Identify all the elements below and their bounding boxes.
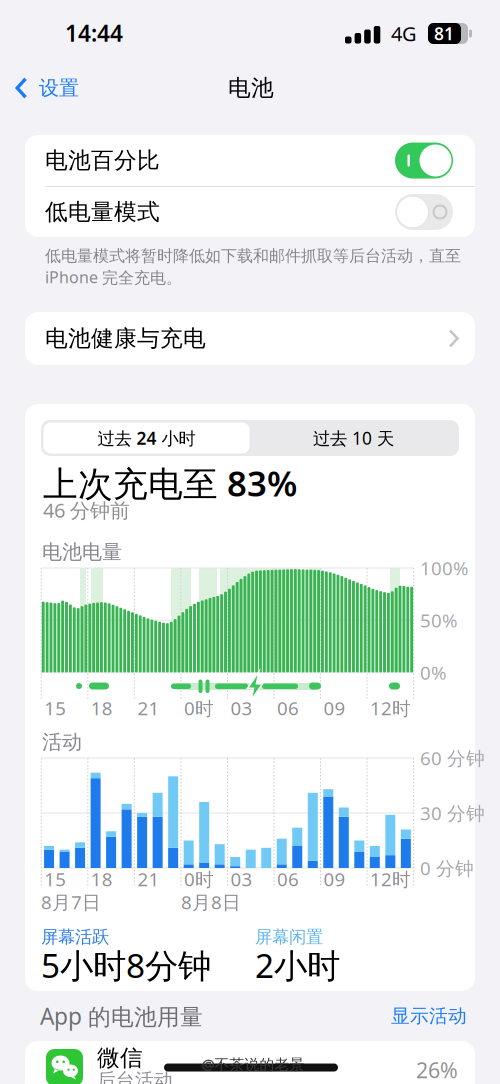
button[interactable]: 显示活动 xyxy=(0,0,220,31)
staticText: 30 分钟 xyxy=(420,801,485,825)
staticText: 09 xyxy=(323,696,345,720)
staticText: 14:44 xyxy=(65,18,123,48)
staticText: 26% xyxy=(416,1056,458,1084)
staticText: 电池 xyxy=(228,74,274,102)
staticText: 18 xyxy=(91,696,113,720)
button[interactable]: 电池健康与充电 xyxy=(25,312,475,365)
staticText: 06 xyxy=(277,696,299,720)
staticText: 100% xyxy=(420,556,469,580)
staticText: 12时 xyxy=(370,867,411,891)
staticText: 15 xyxy=(44,696,66,720)
staticText: 03 xyxy=(230,696,252,720)
staticText: 50% xyxy=(420,608,458,633)
staticText: 81 xyxy=(434,22,454,45)
staticText: 8月7日 xyxy=(41,890,101,914)
staticText: 低电量模式将暂时降低如下载和邮件抓取等后台活动，直至 xyxy=(45,246,461,266)
staticText: 06 xyxy=(277,867,299,891)
staticText: 微信 xyxy=(97,1044,143,1072)
staticText: 0% xyxy=(420,660,447,685)
button[interactable]: 微信 xyxy=(25,1041,475,1084)
staticText: 后台活动 xyxy=(97,1068,173,1084)
staticText: 电池百分比 xyxy=(45,147,160,174)
staticText: iPhone 完全充电。 xyxy=(45,266,182,288)
staticText: 60 分钟 xyxy=(420,746,485,770)
staticText: 设置 xyxy=(39,76,79,100)
staticText: 15 xyxy=(44,867,66,891)
staticText: 03 xyxy=(230,867,252,891)
staticText: 活动 xyxy=(42,730,82,754)
staticText: 过去 24 小时 xyxy=(97,426,195,449)
staticText: 显示活动 xyxy=(391,1004,467,1027)
staticText: 电池健康与充电 xyxy=(45,325,206,352)
staticText: 屏幕活跃 xyxy=(41,926,109,948)
staticText: App 的电池用量 xyxy=(40,1001,203,1031)
staticText: 5小时8分钟 xyxy=(41,943,211,987)
staticText: 09 xyxy=(323,867,345,891)
button[interactable]: 过去 10 天 xyxy=(250,422,456,453)
staticText: 46 分钟前 xyxy=(43,497,130,523)
staticText: 2小时 xyxy=(255,943,340,987)
staticText: @不茶说的老景 xyxy=(201,1054,304,1074)
staticText: 21 xyxy=(137,867,159,891)
staticText: 0 分钟 xyxy=(420,856,474,880)
button[interactable]: 电池百分比 xyxy=(25,135,475,186)
button[interactable]: 低电量模式 xyxy=(25,186,475,237)
button[interactable]: 设置 xyxy=(15,73,79,103)
staticText: 屏幕闲置 xyxy=(255,926,323,948)
staticText: 8月8日 xyxy=(181,890,241,914)
staticText: 低电量模式 xyxy=(45,198,160,226)
staticText: 上次充电至 83% xyxy=(43,460,297,506)
staticText: 电池电量 xyxy=(42,540,122,564)
staticText: 4G xyxy=(391,20,417,47)
staticText: 0时 xyxy=(184,867,214,891)
staticText: 18 xyxy=(91,867,113,891)
staticText: 12时 xyxy=(370,696,411,720)
staticText: 21 xyxy=(137,696,159,720)
staticText: 过去 10 天 xyxy=(313,426,394,449)
button[interactable]: 过去 24 小时 xyxy=(43,422,249,453)
staticText: 0时 xyxy=(184,696,214,720)
